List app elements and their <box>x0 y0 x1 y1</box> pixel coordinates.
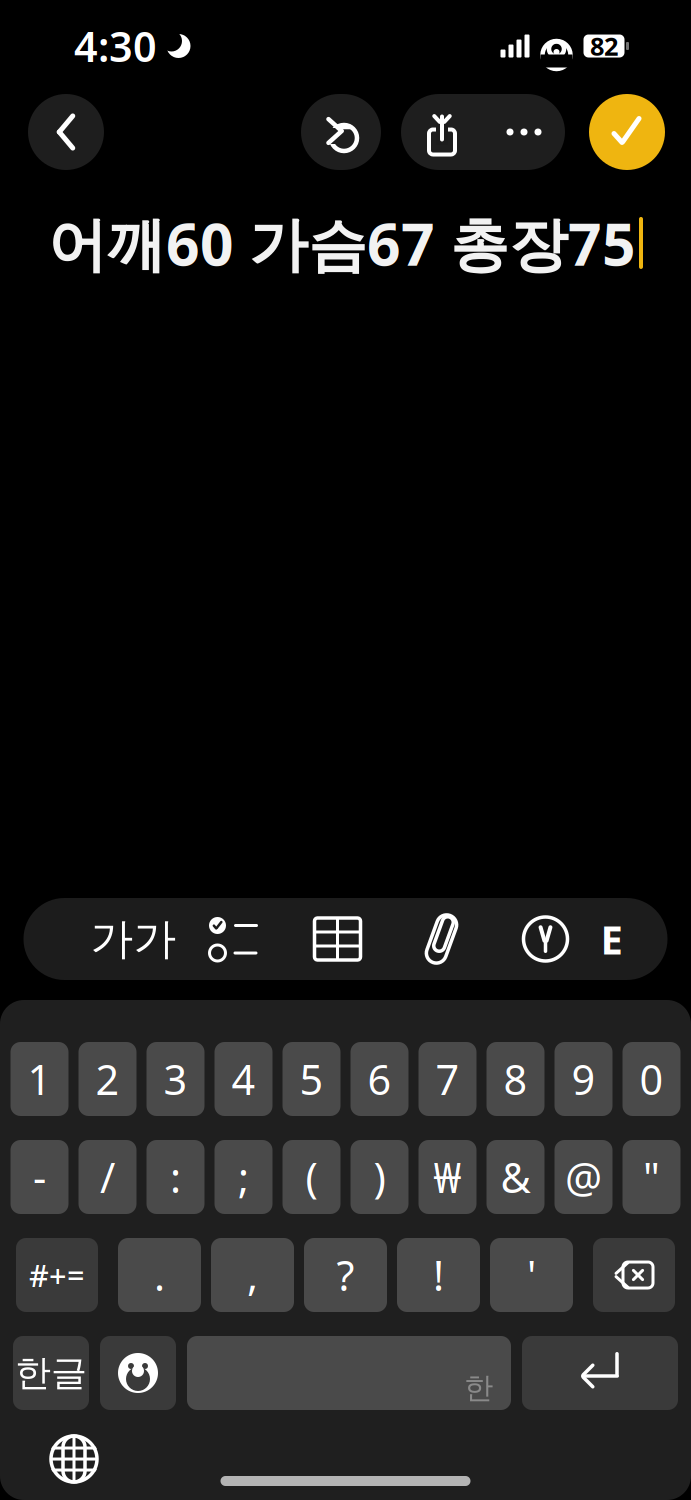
staticText: 9 <box>571 1052 595 1106</box>
staticText: : <box>170 1150 181 1204</box>
button[interactable]: ( <box>282 1140 340 1214</box>
button[interactable]: - <box>10 1140 68 1214</box>
staticText: 1 <box>27 1052 51 1106</box>
button[interactable]: Checklist <box>181 901 285 977</box>
button[interactable]: 한글 <box>13 1336 89 1410</box>
button[interactable]: 1 <box>10 1042 68 1116</box>
button[interactable]: " <box>622 1140 680 1214</box>
button[interactable]: ! <box>397 1238 480 1312</box>
button[interactable]: , <box>211 1238 294 1312</box>
button[interactable]: Share <box>401 94 483 170</box>
staticText: @ <box>565 1150 602 1204</box>
button[interactable]: More <box>483 94 565 170</box>
staticText: 한 <box>464 1370 493 1406</box>
button[interactable]: : <box>146 1140 204 1214</box>
button[interactable]: ₩ <box>418 1140 476 1214</box>
staticText: ; <box>238 1150 249 1204</box>
button[interactable]: Attach <box>389 901 493 977</box>
button[interactable]: 4 <box>214 1042 272 1116</box>
button[interactable]: 8 <box>486 1042 544 1116</box>
staticText: ? <box>336 1248 354 1302</box>
button[interactable]: Markup <box>493 901 597 977</box>
button[interactable]: 3 <box>146 1042 204 1116</box>
staticText: / <box>100 1150 115 1204</box>
staticText: 4:30 <box>74 19 157 73</box>
staticText: 가가 <box>90 913 176 965</box>
staticText: 3 <box>163 1052 187 1106</box>
staticText: 어깨60 가슴67 총장75 <box>48 204 636 282</box>
staticText: E <box>600 912 622 965</box>
staticText: 5 <box>299 1052 323 1106</box>
staticText: 0 <box>639 1052 663 1106</box>
staticText: ! <box>433 1248 444 1302</box>
button[interactable]: 5 <box>282 1042 340 1116</box>
button[interactable]: Next keyboard <box>42 1428 106 1490</box>
staticText: . <box>154 1248 165 1302</box>
button[interactable]: 6 <box>350 1042 408 1116</box>
button[interactable]: & <box>486 1140 544 1214</box>
staticText: & <box>500 1150 530 1204</box>
button[interactable]: Delete <box>593 1238 675 1312</box>
staticText: " <box>643 1150 660 1204</box>
staticText: 4 <box>231 1052 255 1106</box>
button[interactable]: 9 <box>554 1042 612 1116</box>
button[interactable]: 7 <box>418 1042 476 1116</box>
button[interactable]: 2 <box>78 1042 136 1116</box>
button[interactable]: 가가 <box>85 901 181 977</box>
button[interactable]: Back <box>28 94 104 170</box>
button[interactable]: Undo <box>301 94 381 170</box>
button[interactable]: More formatting <box>597 901 625 977</box>
staticText: 2 <box>95 1052 119 1106</box>
staticText: - <box>33 1150 46 1204</box>
button[interactable]: @ <box>554 1140 612 1214</box>
button[interactable]: Table <box>285 901 389 977</box>
button[interactable]: #+= <box>16 1238 98 1312</box>
staticText: 8 <box>503 1052 527 1106</box>
button[interactable]: / <box>78 1140 136 1214</box>
button[interactable]: Return <box>522 1336 678 1410</box>
staticText: ( <box>305 1150 317 1204</box>
button[interactable]: ; <box>214 1140 272 1214</box>
button[interactable]: . <box>118 1238 201 1312</box>
staticText: 82 <box>590 29 618 63</box>
staticText: , <box>247 1248 258 1302</box>
button[interactable]: Emoji <box>100 1336 176 1410</box>
button[interactable]: ? <box>304 1238 387 1312</box>
staticText: ₩ <box>433 1150 461 1204</box>
staticText: 7 <box>435 1052 459 1106</box>
staticText: #+= <box>29 1255 85 1295</box>
staticText: ) <box>373 1150 385 1204</box>
button[interactable]: 0 <box>622 1042 680 1116</box>
staticText: 6 <box>367 1052 391 1106</box>
button[interactable]: Done <box>589 94 665 170</box>
staticText: ' <box>527 1248 536 1302</box>
staticText: 한글 <box>15 1351 87 1395</box>
button[interactable]: ) <box>350 1140 408 1214</box>
button[interactable]: Space <box>187 1336 511 1410</box>
button[interactable]: ' <box>490 1238 573 1312</box>
